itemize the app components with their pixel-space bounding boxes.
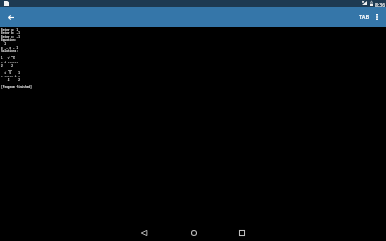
button[interactable]: Recents: [232, 218, 252, 238]
button[interactable]: TAB: [354, 7, 374, 27]
staticText: Solutions:: [1, 49, 19, 53]
button[interactable]: Back: [1, 7, 20, 27]
staticText: [Program finished]: [1, 85, 32, 89]
staticText: Enter a: 1: [1, 28, 19, 32]
staticText: Enter b: -1: [1, 31, 20, 35]
staticText: 2 2: [1, 78, 20, 82]
staticText: - ----- + -: [1, 74, 20, 78]
staticText: 2: [1, 42, 7, 46]
staticText: - + ------: [1, 60, 19, 64]
staticText: Enter c: -1: [1, 35, 20, 39]
staticText: 8:36: [375, 1, 386, 8]
staticText: TAB: [359, 13, 370, 21]
button[interactable]: Home: [184, 218, 204, 238]
staticText: 2 2: [1, 64, 14, 68]
staticText: √ 5 1: [1, 71, 20, 75]
button[interactable]: Back: [134, 218, 154, 238]
staticText: x - x - 1: [1, 46, 19, 50]
button[interactable]: More options: [371, 7, 382, 27]
staticText: 1 √ 5: [1, 56, 15, 60]
staticText: Equation:: [1, 38, 17, 42]
